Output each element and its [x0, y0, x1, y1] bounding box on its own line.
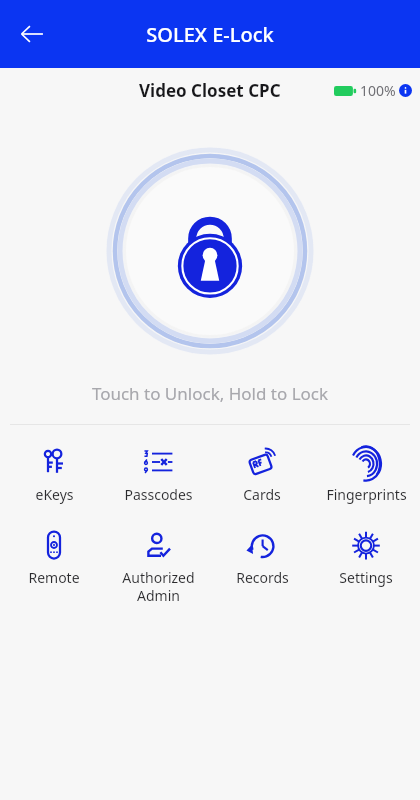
button[interactable]: Passcodes — [108, 445, 208, 506]
button[interactable]: 100% — [334, 81, 412, 100]
staticText: SOLEX E-Lock — [146, 21, 274, 48]
button[interactable]: Back — [8, 10, 56, 58]
button[interactable]: Cards — [212, 445, 312, 506]
staticText: Remote — [28, 568, 80, 587]
staticText: Passcodes — [124, 485, 193, 504]
button[interactable]: Authorized Admin — [108, 528, 208, 607]
staticText: Settings — [339, 568, 393, 587]
staticText: Fingerprints — [326, 485, 407, 504]
button[interactable]: Fingerprints — [316, 445, 416, 506]
staticText: Touch to Unlock, Hold to Lock — [0, 382, 420, 405]
staticText: Cards — [243, 485, 281, 504]
button[interactable]: eKeys — [4, 445, 104, 506]
button[interactable]: Records — [212, 528, 312, 589]
button[interactable]: Settings — [316, 528, 416, 589]
staticText: Authorized Admin — [122, 568, 195, 605]
staticText: Video Closet CPC — [139, 79, 281, 102]
staticText: 100% — [360, 81, 396, 100]
staticText: eKeys — [35, 485, 74, 504]
staticText: Records — [236, 568, 289, 587]
button[interactable]: Touch to Unlock, Hold to Lock — [105, 146, 315, 356]
button[interactable]: Remote — [4, 528, 104, 589]
